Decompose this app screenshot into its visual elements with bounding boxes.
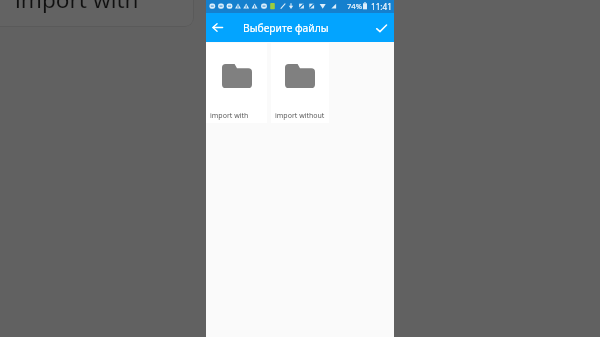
staticText: import without <box>275 111 325 121</box>
button[interactable]: import without <box>271 43 329 123</box>
staticText: Выберите файлы <box>243 21 329 35</box>
staticText: import with <box>210 111 249 121</box>
staticText: import with <box>15 0 139 15</box>
button[interactable]: import with <box>206 43 267 123</box>
button[interactable]: Back <box>209 19 226 36</box>
staticText: 74% <box>347 1 362 11</box>
staticText: 11:41 <box>371 1 392 12</box>
button[interactable]: Confirm selection <box>373 20 390 37</box>
